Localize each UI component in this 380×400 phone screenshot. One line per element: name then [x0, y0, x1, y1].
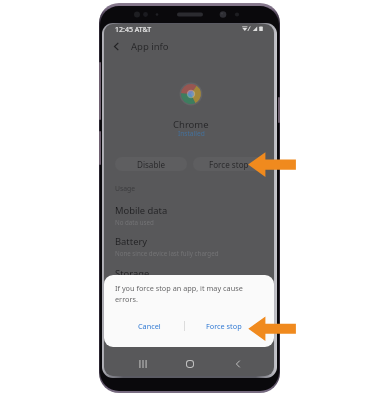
- staticText: Force stop: [209, 159, 249, 170]
- staticText: If you force stop an app, it may cause e…: [115, 283, 247, 304]
- button[interactable]: Storage: [104, 263, 274, 294]
- button[interactable]: Force stop: [193, 157, 265, 171]
- staticText: Chrome: [173, 118, 209, 131]
- button[interactable]: Disable: [115, 157, 187, 171]
- button[interactable]: Cancel: [120, 318, 179, 334]
- button[interactable]: Recents: [133, 354, 153, 374]
- staticText: No data used: [115, 218, 154, 226]
- staticText: Disable: [137, 159, 166, 170]
- staticText: Storage: [115, 267, 150, 280]
- staticText: Usage: [115, 184, 136, 193]
- staticText: Cancel: [138, 321, 161, 331]
- staticText: 12:45 AT&T: [115, 25, 152, 35]
- staticText: None since device last fully charged: [115, 249, 219, 257]
- button[interactable]: Battery: [104, 231, 274, 262]
- other: Back: [106, 36, 126, 56]
- staticText: Battery: [115, 235, 148, 248]
- staticText: Force stop: [206, 321, 242, 331]
- button[interactable]: Back: [228, 354, 248, 374]
- staticText: 0.00 MB used in internal storage: [115, 281, 210, 289]
- staticText: App info: [131, 40, 169, 53]
- button[interactable]: Back: [106, 36, 169, 56]
- staticText: Mobile data: [115, 204, 168, 217]
- button[interactable]: Mobile data: [104, 200, 274, 231]
- button[interactable]: Home: [180, 354, 200, 374]
- button[interactable]: Force stop: [193, 318, 255, 334]
- staticText: Installed: [178, 129, 205, 138]
